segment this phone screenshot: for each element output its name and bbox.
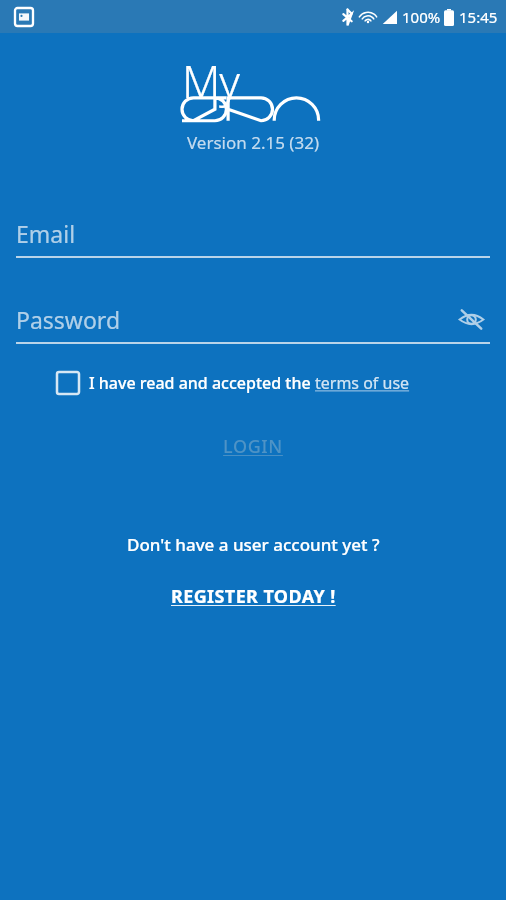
staticText: 100% (402, 7, 441, 27)
button[interactable]: terms of use (315, 372, 410, 394)
staticText: Password (16, 304, 121, 335)
staticText: My (182, 51, 240, 111)
staticText: I have read and accepted the (89, 372, 315, 394)
button[interactable]: I have read and accepted the (16, 372, 490, 394)
staticText: LOGIN (223, 434, 283, 459)
button[interactable]: LOGIN (201, 426, 305, 467)
staticText: Email (16, 218, 76, 249)
staticText: Don't have a user account yet ? (127, 533, 380, 556)
staticText: REGISTER TODAY ! (171, 584, 336, 609)
staticText: 15:45 (459, 7, 498, 27)
staticText: Version 2.15 (32) (187, 131, 320, 154)
button[interactable]: Show password (452, 302, 490, 336)
button[interactable]: REGISTER TODAY ! (155, 578, 352, 615)
